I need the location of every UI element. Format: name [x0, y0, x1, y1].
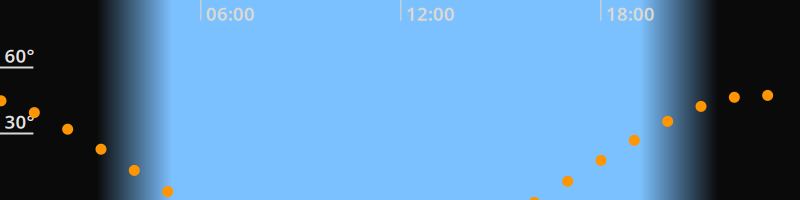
staticText: 12:00: [406, 1, 455, 26]
staticText: 30°: [4, 109, 34, 134]
staticText: 18:00: [606, 1, 655, 26]
staticText: 06:00: [206, 1, 255, 26]
staticText: 60°: [4, 43, 34, 68]
